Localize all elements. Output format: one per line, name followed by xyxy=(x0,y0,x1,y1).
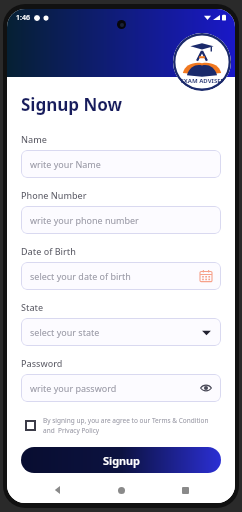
staticText: Phone Number xyxy=(21,189,87,201)
button[interactable]: write your password xyxy=(21,374,221,402)
button[interactable]: select your state xyxy=(21,318,221,346)
staticText: Name xyxy=(21,133,47,145)
staticText: write your phone number xyxy=(30,214,212,226)
staticText: select your state xyxy=(30,326,201,338)
button[interactable]: select your date of birth xyxy=(21,262,221,290)
button[interactable]: Signup xyxy=(21,447,221,473)
other: Open state list xyxy=(201,327,212,338)
button[interactable]: write your Name xyxy=(21,150,221,178)
staticText: By signing up, you are agree to our Term… xyxy=(43,416,221,435)
button[interactable]: Recent apps xyxy=(172,477,198,503)
staticText: State xyxy=(21,301,44,313)
button[interactable]: By signing up, you are agree to our Term… xyxy=(21,414,221,437)
staticText: 1:46 xyxy=(16,13,30,23)
other: Show password xyxy=(200,382,212,394)
staticText: write your password xyxy=(30,382,200,394)
button[interactable]: Back xyxy=(45,477,71,503)
staticText: EXAM ADVISER xyxy=(180,77,225,85)
other: Pick date xyxy=(200,270,212,282)
staticText: Date of Birth xyxy=(21,245,76,257)
staticText: Password xyxy=(21,357,63,369)
button[interactable]: Home xyxy=(108,477,134,503)
staticText: write your Name xyxy=(30,158,212,170)
button[interactable]: write your phone number xyxy=(21,206,221,234)
staticText: Signup Now xyxy=(21,93,123,116)
other: Exam Adviser logo xyxy=(173,33,231,91)
staticText: Signup xyxy=(103,453,140,468)
staticText: select your date of birth xyxy=(30,270,200,282)
